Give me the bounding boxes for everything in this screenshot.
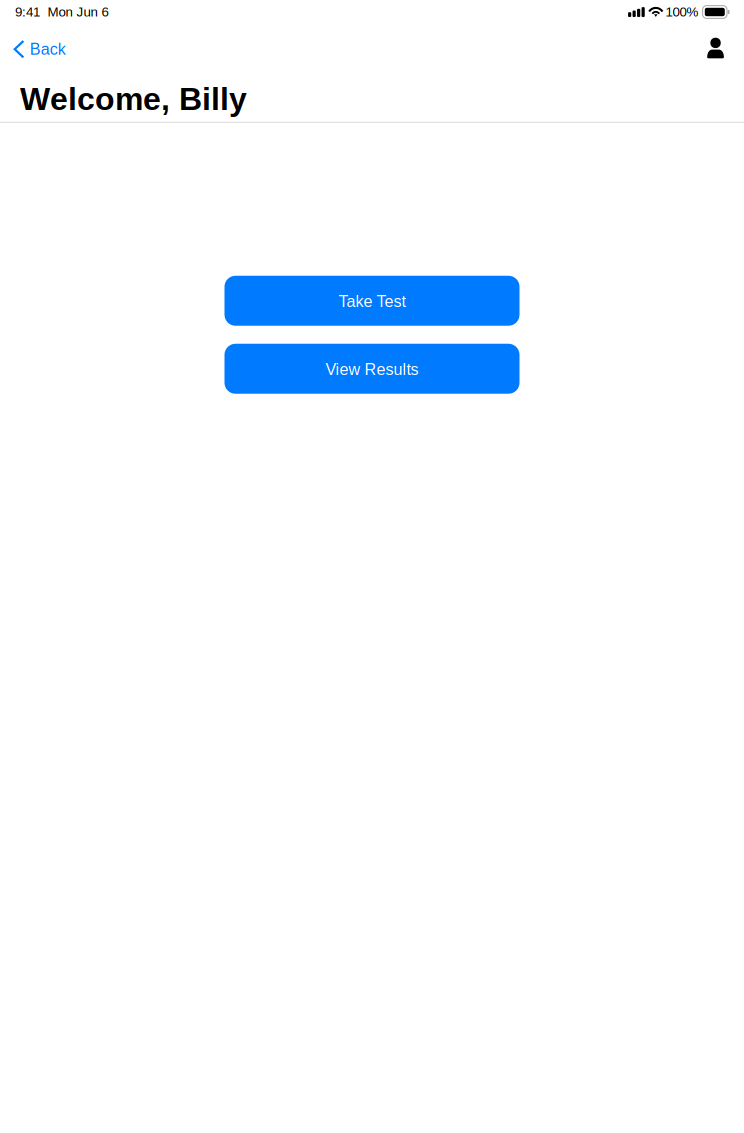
staticText: Take Test bbox=[338, 292, 405, 310]
staticText: View Results bbox=[325, 360, 418, 378]
button[interactable]: Take Test bbox=[224, 276, 519, 326]
staticText: Back bbox=[30, 40, 66, 58]
staticText: 100% bbox=[666, 5, 699, 19]
staticText: Mon Jun 6 bbox=[47, 5, 108, 19]
button[interactable]: View Results bbox=[224, 344, 519, 394]
button[interactable]: Account bbox=[696, 30, 735, 62]
staticText: 9:41 bbox=[15, 5, 40, 19]
button[interactable]: Back bbox=[0, 30, 77, 62]
staticText: Welcome, Billy bbox=[20, 81, 247, 117]
